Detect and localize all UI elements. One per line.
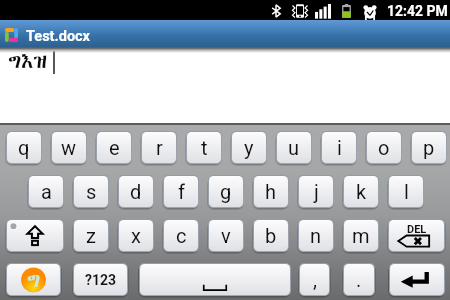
button[interactable]: i [322, 132, 356, 163]
staticText: u [288, 136, 300, 159]
staticText: t [201, 136, 208, 159]
staticText: e [109, 136, 120, 159]
button[interactable]: e [97, 132, 131, 163]
staticText: f [178, 180, 185, 203]
button[interactable]: k [344, 176, 378, 207]
staticText: q [18, 136, 30, 159]
button[interactable]: Change language [7, 264, 60, 295]
button[interactable]: x [119, 220, 153, 251]
button[interactable]: . [344, 264, 374, 295]
staticText: r [156, 136, 163, 159]
staticText: p [423, 136, 435, 159]
button[interactable]: j [299, 176, 333, 207]
button[interactable]: s [74, 176, 108, 207]
staticText: h [265, 180, 277, 203]
button[interactable]: Shift [7, 220, 63, 251]
button[interactable]: Delete [389, 220, 444, 251]
staticText: i [337, 136, 342, 159]
staticText: a [41, 180, 52, 203]
button[interactable]: b [254, 220, 288, 251]
staticText: ግ [27, 266, 41, 294]
button[interactable]: u [277, 132, 311, 163]
button[interactable]: c [164, 220, 198, 251]
button[interactable]: l [389, 176, 423, 207]
staticText: d [130, 180, 142, 203]
staticText: k [356, 180, 367, 203]
button[interactable]: t [187, 132, 221, 163]
staticText: j [314, 180, 319, 203]
staticText: m [352, 224, 370, 247]
button[interactable]: y [232, 132, 266, 163]
button[interactable]: d [119, 176, 153, 207]
button[interactable]: o [367, 132, 401, 163]
staticText: c [176, 224, 187, 247]
staticText: o [378, 136, 390, 159]
staticText: . [356, 268, 362, 291]
staticText: DEL [407, 223, 427, 236]
button[interactable]: z [74, 220, 108, 251]
button[interactable]: q [7, 132, 41, 163]
button[interactable]: h [254, 176, 288, 207]
button[interactable]: f [164, 176, 198, 207]
staticText: x [131, 224, 141, 247]
button[interactable]: m [344, 220, 378, 251]
button[interactable]: p [412, 132, 446, 163]
staticText: Test.docx [26, 28, 91, 45]
button[interactable]: n [299, 220, 333, 251]
staticText: v [221, 224, 231, 247]
staticText: s [86, 180, 97, 203]
button[interactable]: a [29, 176, 63, 207]
button[interactable]: ?123 [74, 264, 127, 295]
button[interactable]: Enter [390, 264, 444, 295]
button[interactable]: r [142, 132, 176, 163]
staticText: l [404, 180, 409, 203]
staticText: n [310, 224, 322, 247]
staticText: g [220, 180, 232, 203]
staticText: b [265, 224, 277, 247]
staticText: ግእዝ [8, 47, 47, 75]
button[interactable]: v [209, 220, 243, 251]
staticText: 12:42 PM [387, 3, 448, 19]
staticText: , [313, 268, 317, 291]
staticText: z [86, 224, 96, 247]
button[interactable]: w [52, 132, 86, 163]
staticText: y [244, 136, 254, 159]
button[interactable]: g [209, 176, 243, 207]
button[interactable]: , [300, 264, 329, 295]
staticText: w [61, 136, 77, 159]
staticText: ?123 [85, 272, 117, 288]
button[interactable]: Space [140, 264, 290, 295]
